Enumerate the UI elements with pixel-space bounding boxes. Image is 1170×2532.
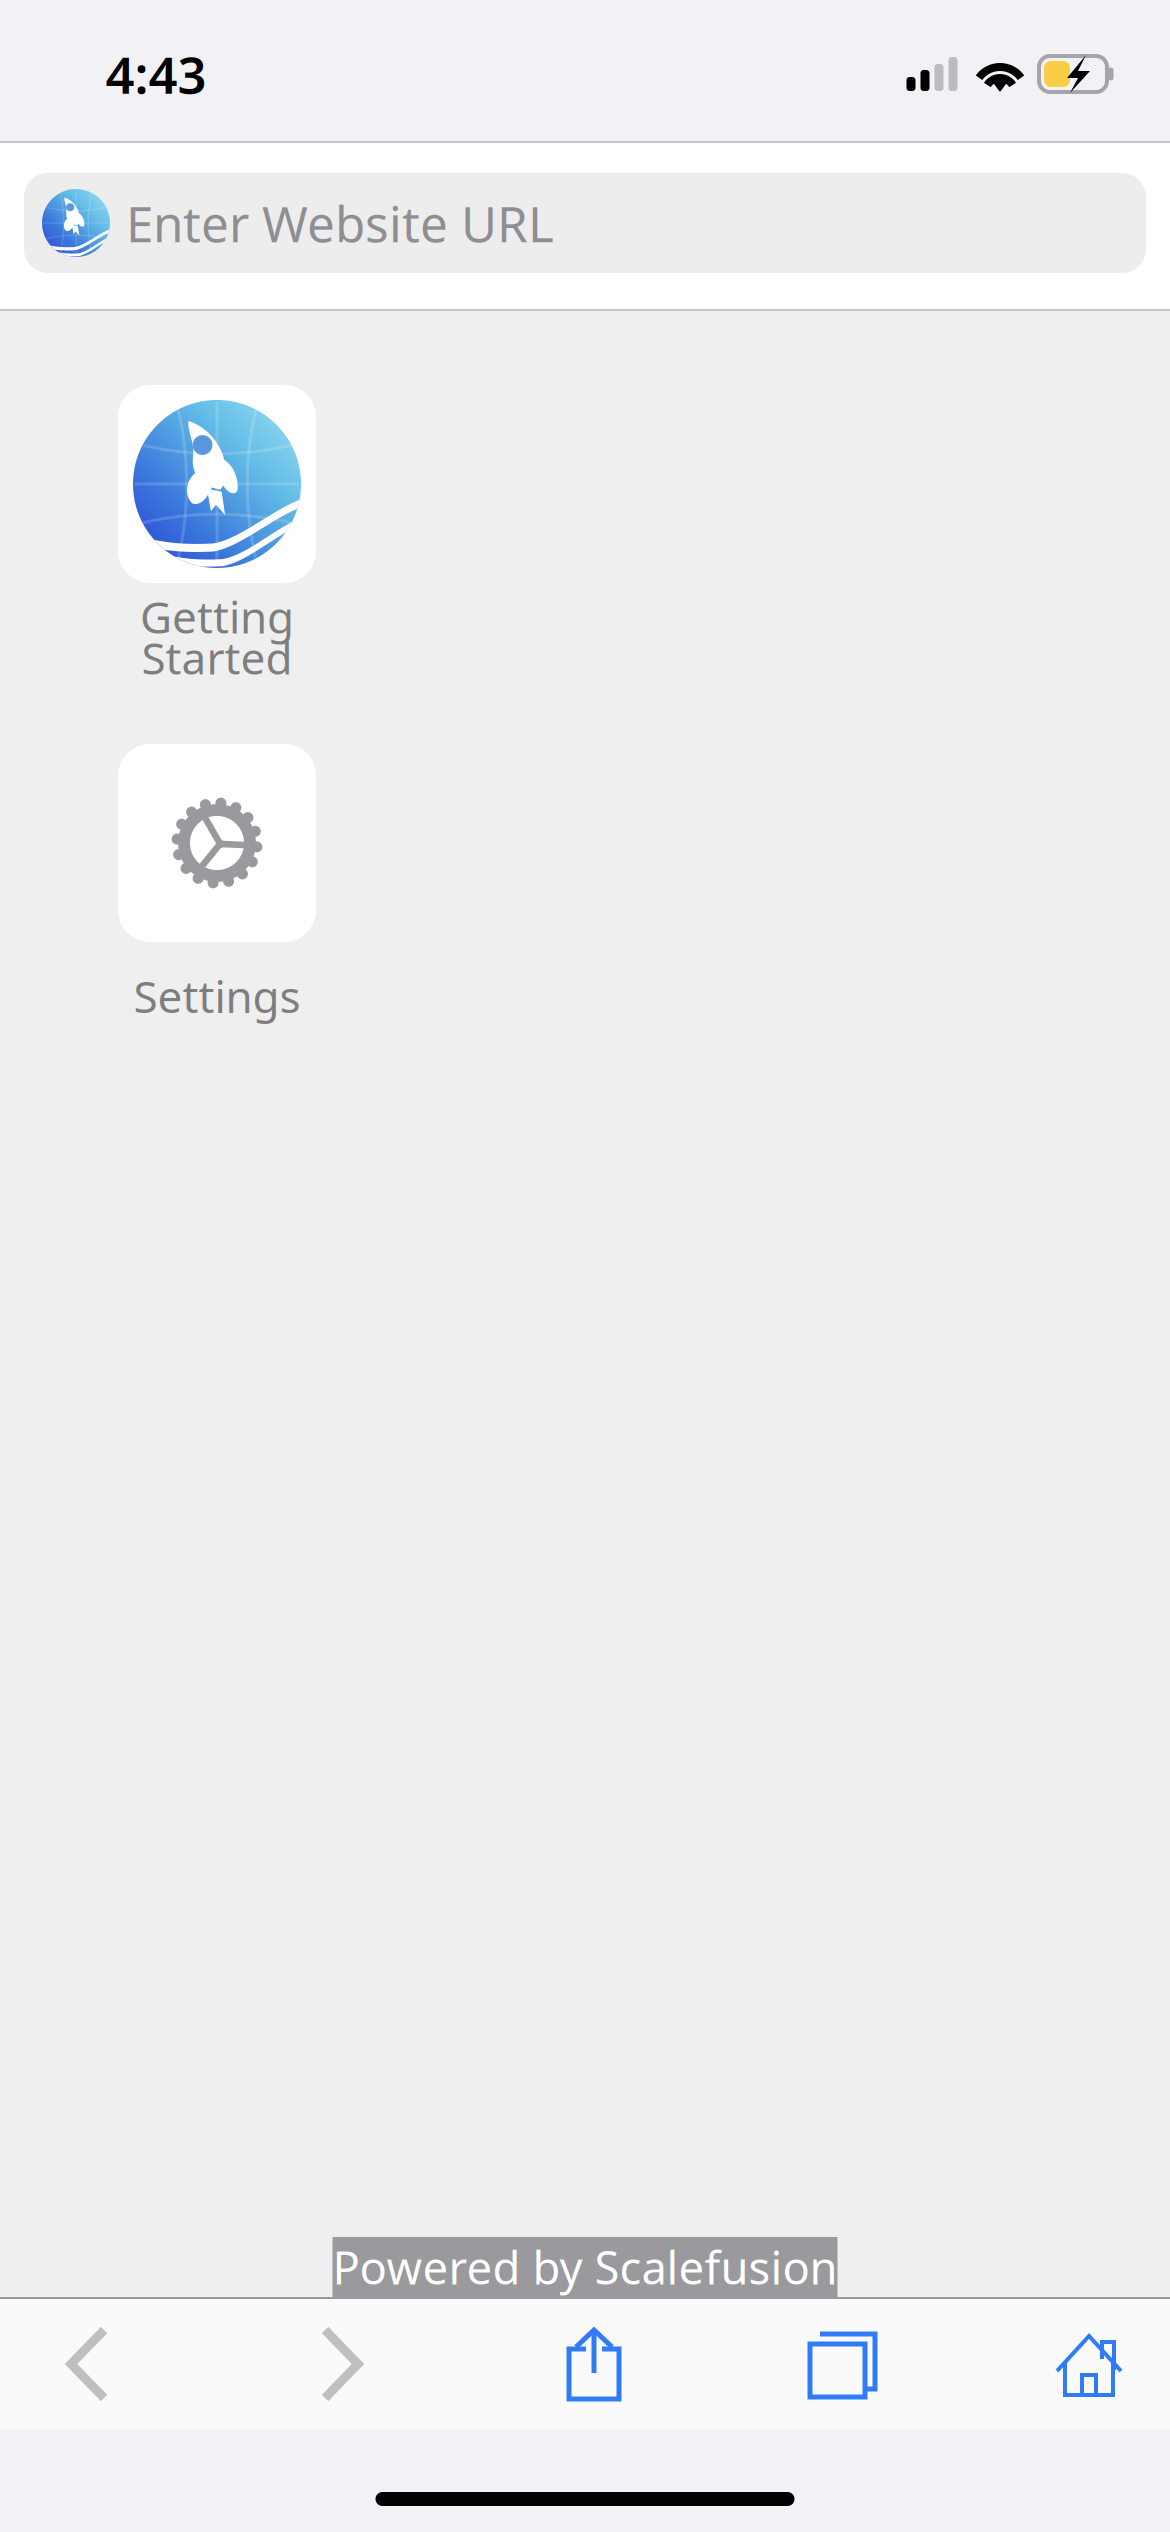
staticText: Powered by Scalefusion xyxy=(332,2237,837,2297)
button[interactable]: Settings xyxy=(107,744,327,1037)
staticText: Settings xyxy=(133,967,300,1025)
staticText: 4:43 xyxy=(105,40,206,108)
staticText: Getting xyxy=(140,587,294,646)
button[interactable]: Forward xyxy=(275,2299,407,2429)
staticText: Started xyxy=(141,628,292,687)
staticText: Enter Website URL xyxy=(126,190,554,256)
button[interactable]: Getting xyxy=(107,385,327,678)
button[interactable]: Back xyxy=(22,2299,154,2429)
button[interactable]: Enter Website URL xyxy=(24,173,1146,273)
button[interactable]: Home xyxy=(1023,2299,1155,2429)
button[interactable]: Share xyxy=(528,2299,660,2429)
button[interactable]: Tabs xyxy=(777,2299,909,2429)
